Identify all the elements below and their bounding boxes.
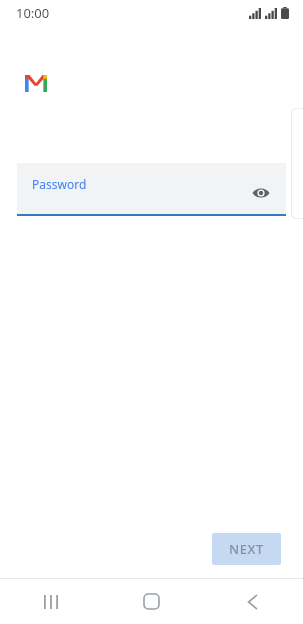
button[interactable]: NEXT [212,533,281,565]
staticText: NEXT [229,540,264,558]
button[interactable]: Home [101,579,202,624]
button[interactable]: Show password [248,180,274,206]
button[interactable]: Back [202,579,303,624]
staticText: Password [32,176,87,192]
button[interactable]: Recent apps [0,579,101,624]
staticText: 10:00 [16,4,50,22]
button[interactable]: Password [17,163,286,216]
